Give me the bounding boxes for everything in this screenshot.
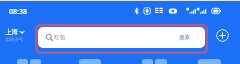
staticText: 搜索 <box>179 34 190 41</box>
staticText: 红包 <box>54 34 65 41</box>
button[interactable]: 上海 <box>5 28 26 36</box>
staticText: 实时天气 <box>5 37 23 43</box>
staticText: 上海 <box>5 28 18 36</box>
button[interactable]: Add <box>216 29 229 42</box>
staticText: 08:38 <box>9 7 27 17</box>
button[interactable]: 红包 <box>38 27 205 48</box>
button[interactable]: 搜索 <box>179 34 190 41</box>
